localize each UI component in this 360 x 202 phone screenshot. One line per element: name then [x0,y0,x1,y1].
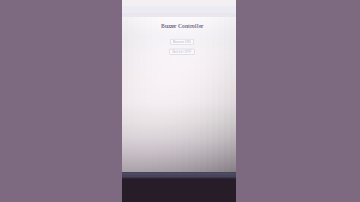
button[interactable]: Buzzer OFF [169,49,194,54]
button[interactable]: Buzzer ON [170,39,193,44]
staticText: Buzzer Controller [161,23,203,29]
staticText: Buzzer ON [173,40,191,44]
staticText: Buzzer OFF [172,50,191,54]
